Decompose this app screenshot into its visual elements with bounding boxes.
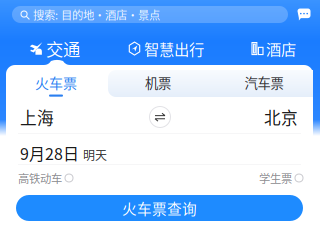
button[interactable]: 学生票 — [259, 170, 303, 186]
button[interactable]: 交换出发地与目的地 — [147, 104, 173, 130]
staticText: 火车票 — [35, 72, 77, 93]
staticText: 北京 — [264, 105, 298, 129]
button[interactable]: 消息 — [295, 6, 313, 23]
staticText: 高铁动车 — [18, 170, 62, 186]
staticText: 9月28日 — [20, 141, 79, 165]
button[interactable]: 智慧出行 — [128, 37, 204, 60]
button[interactable]: 酒店 — [252, 37, 296, 60]
button[interactable]: 9月28日 — [20, 142, 303, 164]
button[interactable]: 火车票 — [5, 69, 107, 96]
staticText: 上海 — [20, 105, 54, 129]
staticText: 搜索: 目的地·酒店·景点 — [33, 6, 160, 23]
staticText: 汽车票 — [244, 73, 283, 92]
button[interactable]: 搜索: 目的地·酒店·景点 — [12, 6, 288, 23]
staticText: 酒店 — [266, 37, 296, 60]
staticText: 智慧出行 — [144, 37, 204, 60]
staticText: 机票 — [145, 73, 171, 92]
staticText: 明天 — [83, 146, 107, 163]
staticText: 火车票查询 — [122, 197, 197, 219]
staticText: 交通 — [46, 36, 80, 61]
button[interactable]: 交通 — [29, 36, 80, 61]
button[interactable]: 北京 — [178, 104, 298, 130]
button[interactable]: 汽车票 — [229, 69, 299, 96]
button[interactable]: 高铁动车 — [18, 170, 73, 186]
button[interactable]: 火车票查询 — [16, 195, 303, 221]
button[interactable]: 上海 — [20, 104, 140, 130]
button[interactable]: 机票 — [123, 69, 193, 96]
staticText: 学生票 — [259, 170, 292, 186]
